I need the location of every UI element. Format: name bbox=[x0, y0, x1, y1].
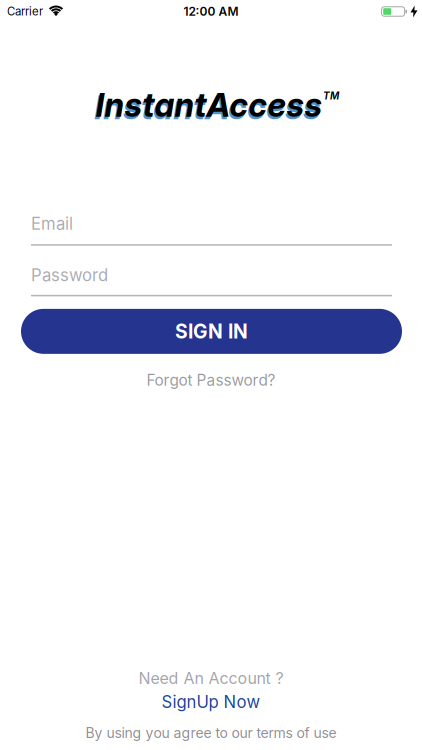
staticText: Need An Account ? bbox=[138, 668, 283, 688]
button[interactable]: Forgot Password? bbox=[146, 371, 275, 389]
staticText: SIGN IN bbox=[175, 320, 248, 343]
staticText: 12:00 AM bbox=[183, 4, 238, 19]
staticText: By using you agree to our terms of use bbox=[85, 725, 336, 741]
staticText: Forgot Password? bbox=[146, 371, 275, 389]
staticText: Carrier bbox=[7, 5, 43, 18]
staticText: Email bbox=[31, 213, 73, 234]
staticText: TM bbox=[323, 90, 339, 102]
button[interactable]: SignUp Now bbox=[161, 692, 260, 712]
staticText: Password bbox=[31, 265, 108, 285]
staticText: SignUp Now bbox=[161, 692, 260, 712]
staticText: InstantAccess bbox=[94, 87, 321, 127]
button[interactable]: SIGN IN bbox=[21, 309, 402, 354]
staticText: InstantAccess bbox=[95, 85, 322, 124]
